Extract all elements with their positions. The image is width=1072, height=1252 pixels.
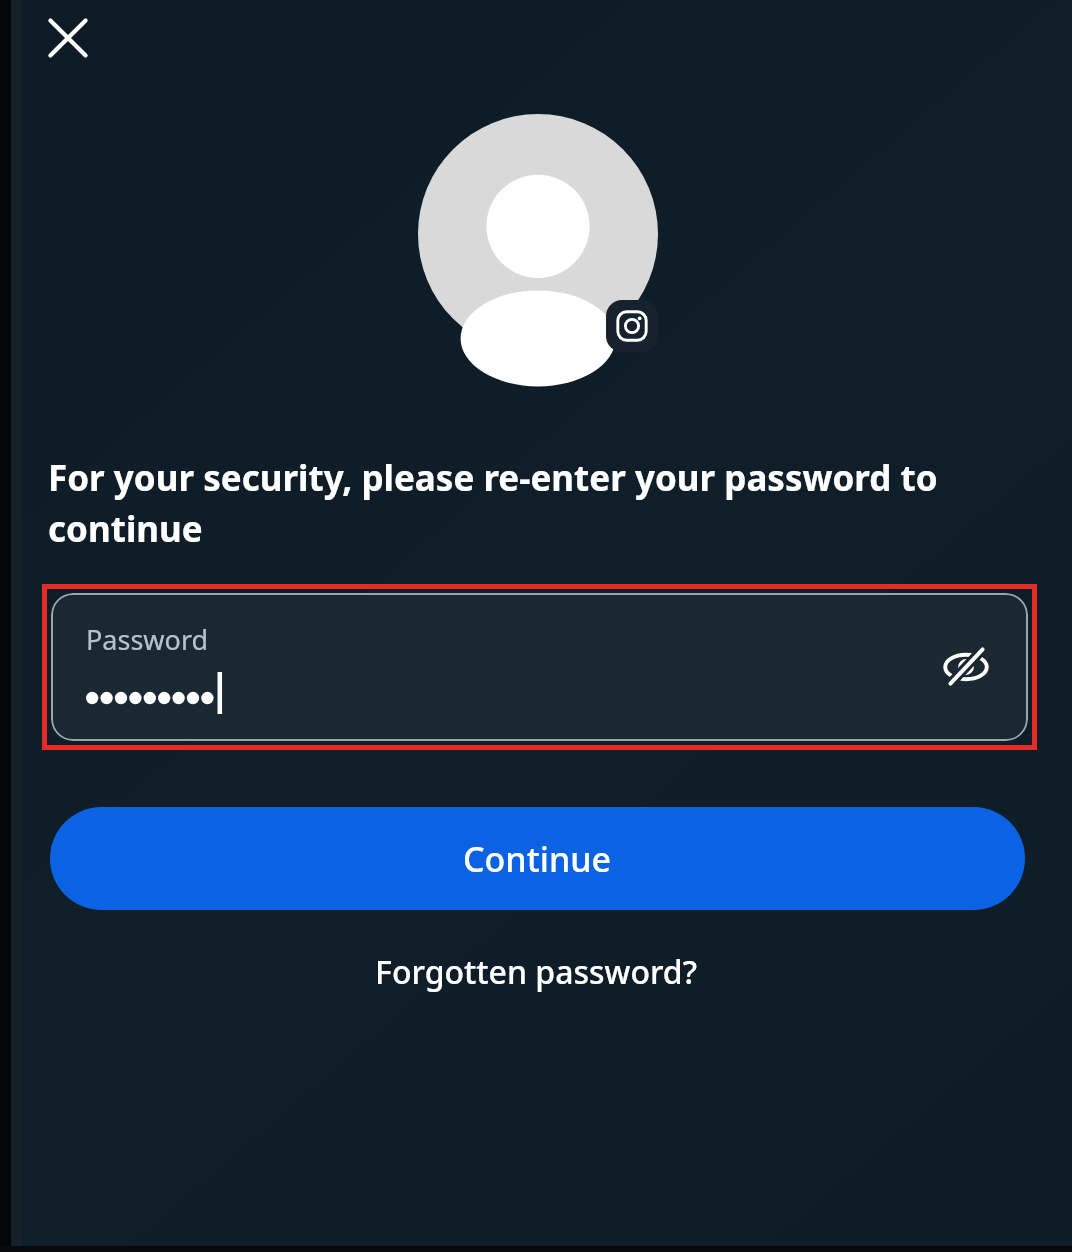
button[interactable]: Close	[30, 0, 106, 76]
button[interactable]: Continue	[50, 807, 1025, 910]
button[interactable]: Hide password	[930, 631, 1002, 703]
staticText: For your security, please re-enter your …	[48, 454, 1012, 552]
staticText: Password	[86, 621, 209, 658]
button[interactable]: Password	[51, 593, 1028, 741]
staticText: Continue	[463, 836, 612, 882]
button[interactable]: Forgotten password?	[0, 934, 1072, 1010]
staticText: Forgotten password?	[375, 950, 697, 994]
button[interactable]: Instagram	[606, 300, 658, 352]
